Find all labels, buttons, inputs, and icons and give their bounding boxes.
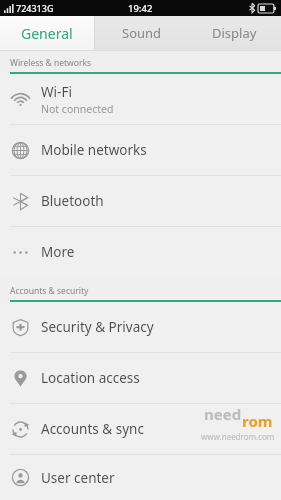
staticText: Bluetooth xyxy=(41,192,104,210)
staticText: More xyxy=(41,243,75,261)
button[interactable]: Security & Privacy xyxy=(0,302,281,352)
button[interactable]: User center xyxy=(0,455,281,500)
button[interactable]: Display xyxy=(188,16,281,50)
staticText: Not connected xyxy=(41,102,114,116)
button[interactable]: General xyxy=(0,16,94,50)
button[interactable]: Mobile networks xyxy=(0,125,281,175)
staticText: Accounts & sync xyxy=(41,420,144,438)
staticText: User center xyxy=(41,469,115,487)
staticText: rom xyxy=(242,411,273,431)
staticText: Wi-Fi xyxy=(41,83,72,101)
button[interactable]: Sound xyxy=(95,16,188,50)
staticText: Accounts & security xyxy=(10,285,89,297)
staticText: 19:42 xyxy=(128,2,153,15)
button[interactable]: Bluetooth xyxy=(0,176,281,226)
staticText: Mobile networks xyxy=(41,141,147,159)
staticText: Display xyxy=(212,24,257,42)
staticText: need xyxy=(204,404,242,424)
button[interactable]: Accounts & sync xyxy=(0,404,281,454)
button[interactable]: Location access xyxy=(0,353,281,403)
staticText: Security & Privacy xyxy=(41,318,154,336)
staticText: Sound xyxy=(122,24,162,42)
button[interactable]: More xyxy=(0,227,281,277)
staticText: Location access xyxy=(41,369,140,387)
staticText: 724313G xyxy=(16,2,54,14)
button[interactable]: Wi-Fi xyxy=(0,74,281,124)
staticText: www.needrom.com xyxy=(201,431,275,442)
staticText: Wireless & networks xyxy=(10,57,92,69)
staticText: General xyxy=(21,24,73,43)
